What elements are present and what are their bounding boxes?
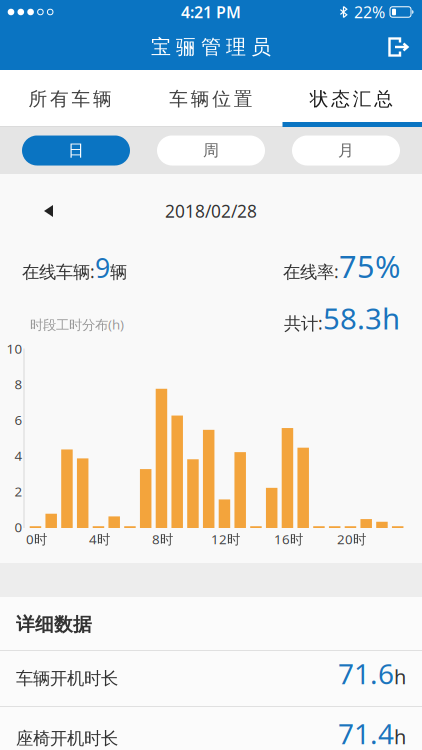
staticText: 宝骊管理员	[151, 35, 271, 59]
staticText: 16时	[274, 530, 303, 548]
staticText: 周	[203, 141, 219, 160]
staticText: 时段工时分布(h)	[30, 315, 124, 333]
staticText: 座椅开机时长	[16, 728, 118, 749]
staticText: h	[394, 663, 406, 690]
button[interactable]: 日	[22, 135, 130, 165]
staticText: 2018/02/28	[165, 199, 257, 222]
button[interactable]: 周	[157, 135, 265, 165]
staticText: 状态汇总	[310, 87, 393, 110]
staticText: 6	[14, 411, 22, 429]
staticText: 8	[14, 375, 22, 393]
staticText: 车辆位置	[169, 87, 253, 110]
staticText: 22%	[354, 1, 385, 23]
staticText: 详细数据	[16, 613, 92, 636]
staticText: 0时	[26, 530, 47, 548]
button[interactable]: 月	[292, 135, 400, 165]
staticText: 12时	[211, 530, 240, 548]
staticText: 75%	[339, 246, 400, 286]
staticText: 车辆开机时长	[16, 668, 118, 689]
staticText: 9	[95, 250, 110, 285]
staticText: 8时	[152, 530, 173, 548]
button[interactable]: 状态汇总	[281, 73, 422, 125]
staticText: 在线率:	[283, 260, 339, 283]
button[interactable]	[0, 195, 53, 227]
staticText: 0	[14, 518, 22, 536]
button[interactable]	[388, 36, 422, 58]
staticText: 日	[68, 141, 84, 160]
staticText: 月	[338, 141, 354, 160]
staticText: 58.3h	[323, 298, 400, 337]
staticText: h	[394, 723, 406, 750]
staticText: 20时	[337, 530, 366, 548]
staticText: 4:21 PM	[181, 1, 241, 23]
staticText: 所有车辆	[28, 87, 112, 110]
button[interactable]: 所有车辆	[0, 73, 141, 125]
staticText: 10	[6, 340, 22, 357]
staticText: 71.4	[338, 715, 394, 750]
staticText: 4	[14, 447, 22, 464]
button[interactable]: 车辆位置	[141, 73, 281, 125]
staticText: 辆	[110, 261, 127, 283]
staticText: 4时	[89, 530, 110, 548]
staticText: 在线车辆:	[22, 260, 95, 283]
staticText: 2	[14, 482, 22, 500]
staticText: 共计:	[284, 311, 323, 334]
staticText: 71.6	[338, 655, 394, 692]
